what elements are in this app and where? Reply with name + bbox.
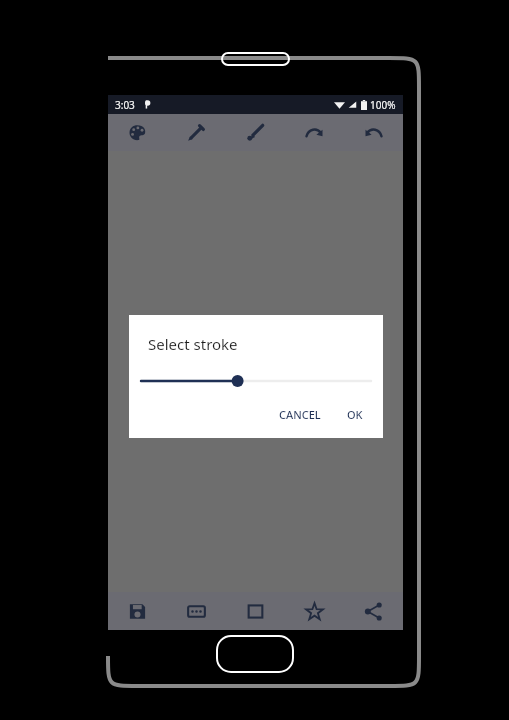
staticText: CANCEL [279,407,321,422]
button[interactable]: Palette [108,114,167,151]
staticText: 100% [370,98,396,112]
staticText: 3:03 [115,98,135,112]
button[interactable]: CANCEL [271,401,329,428]
staticText: OK [347,407,363,422]
button[interactable] [141,371,371,391]
button[interactable]: OK [339,401,371,428]
button[interactable]: More [167,592,226,630]
staticText: Select stroke [148,334,238,354]
button[interactable]: Shape [226,592,285,630]
button[interactable]: Redo [285,114,344,151]
button[interactable]: Save [108,592,167,630]
button[interactable]: Favorite [285,592,344,630]
button[interactable]: Color picker [167,114,226,151]
button[interactable]: Share [344,592,403,630]
button[interactable]: Brush [226,114,285,151]
button[interactable]: Undo [344,114,403,151]
